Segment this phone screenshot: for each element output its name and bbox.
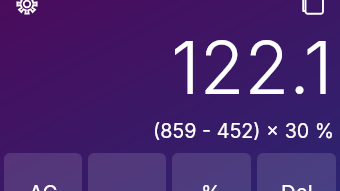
button[interactable]: Settings: [9, 0, 45, 22]
staticText: %: [201, 180, 222, 191]
button[interactable]: AC: [4, 153, 82, 191]
staticText: 122.1: [171, 23, 333, 111]
button[interactable]: %: [172, 153, 251, 191]
staticText: (859 - 452) × 30 %: [153, 119, 335, 143]
button[interactable]: Copy result: [294, 0, 330, 22]
button[interactable]: Del: [257, 153, 336, 191]
staticText: Del: [281, 180, 313, 191]
staticText: AC: [29, 180, 58, 191]
